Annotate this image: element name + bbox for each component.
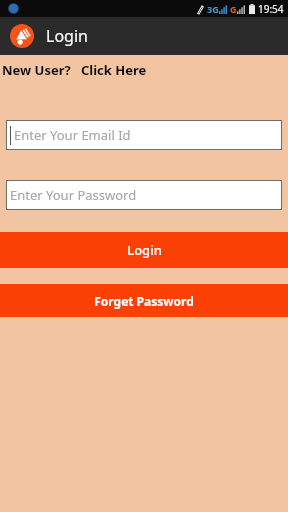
staticText: Login: [46, 25, 88, 47]
staticText: Enter Your Password: [10, 186, 137, 204]
other: App logo: [10, 24, 34, 48]
staticText: G: [230, 3, 237, 15]
button[interactable]: Login: [0, 232, 288, 268]
button[interactable]: Click Here: [81, 61, 147, 79]
button[interactable]: Enter Your Email Id: [6, 120, 282, 150]
staticText: Enter Your Email Id: [14, 126, 131, 144]
button[interactable]: Enter Your Password: [6, 180, 282, 210]
staticText: New User?: [2, 61, 71, 79]
staticText: Login: [127, 241, 162, 259]
staticText: 3G: [207, 3, 219, 15]
button[interactable]: Forget Password: [0, 284, 288, 317]
staticText: 19:54: [258, 2, 284, 16]
staticText: Click Here: [81, 61, 147, 79]
staticText: Forget Password: [94, 293, 194, 309]
